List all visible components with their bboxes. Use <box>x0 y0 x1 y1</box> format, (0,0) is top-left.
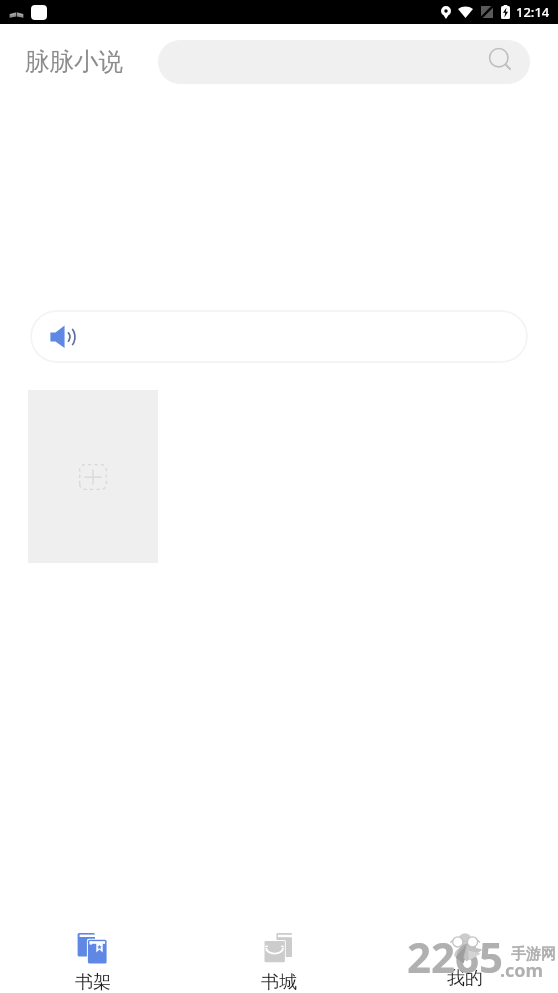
other: Listen <box>50 324 76 350</box>
staticText: 书城 <box>261 971 297 993</box>
staticText: 手游网 <box>511 945 556 964</box>
staticText: 脉脉小说 <box>25 46 123 77</box>
staticText: 12:14 <box>516 3 550 21</box>
button[interactable]: Search <box>158 40 530 84</box>
button[interactable]: 书城 <box>186 926 372 993</box>
button[interactable]: 书架 <box>0 926 186 993</box>
staticText: 2265 <box>407 928 504 985</box>
staticText: 书架 <box>75 971 111 993</box>
staticText: .com <box>500 958 544 983</box>
staticText: 我的 <box>447 967 483 990</box>
button[interactable]: Listen <box>30 310 528 363</box>
button[interactable]: 我的 <box>372 926 558 993</box>
